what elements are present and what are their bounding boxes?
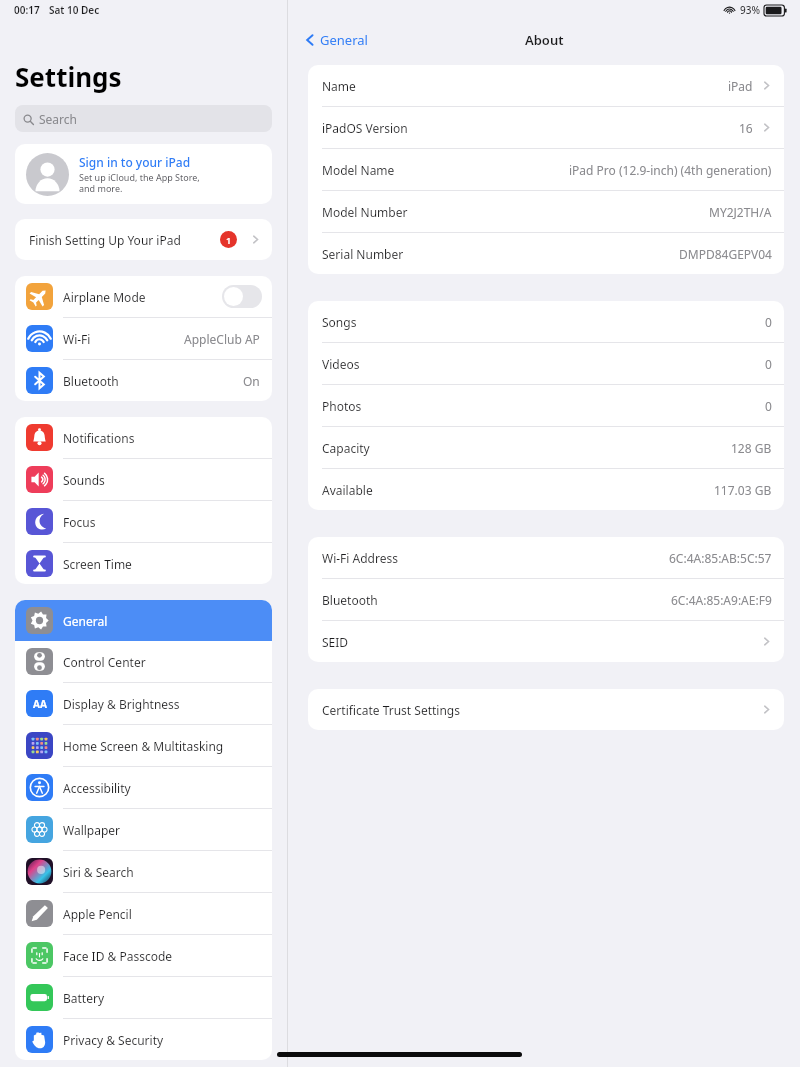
staticText: Wi-Fi <box>63 331 91 347</box>
staticText: iPadOS Version <box>322 120 408 136</box>
staticText: 16 <box>739 120 753 136</box>
button[interactable]: General <box>15 600 272 641</box>
button[interactable]: AA <box>15 683 272 724</box>
staticText: Certificate Trust Settings <box>322 702 460 718</box>
staticText: Wi-Fi Address <box>322 550 398 566</box>
button[interactable]: Videos <box>308 343 784 384</box>
button[interactable]: Privacy & Security <box>15 1019 272 1060</box>
button[interactable]: Name <box>308 65 784 106</box>
staticText: Finish Setting Up Your iPad <box>29 232 181 248</box>
staticText: 00:17 <box>14 3 40 17</box>
staticText: Sign in to your iPad <box>79 154 191 170</box>
button[interactable]: Sounds <box>15 459 272 500</box>
staticText: Accessibility <box>63 780 131 796</box>
staticText: Bluetooth <box>322 592 378 608</box>
button[interactable]: Finish Setting Up Your iPad <box>15 219 272 260</box>
button[interactable]: Airplane Mode <box>15 276 272 317</box>
button[interactable]: Battery <box>15 977 272 1018</box>
button[interactable]: Control Center <box>15 641 272 682</box>
button[interactable]: Siri & Search <box>15 851 272 892</box>
button[interactable]: Search <box>15 105 272 132</box>
button[interactable]: Notifications <box>15 417 272 458</box>
staticText: Notifications <box>63 430 135 446</box>
staticText: 6C:4A:85:A9:AE:F9 <box>671 592 772 608</box>
button[interactable]: Model Number <box>308 191 784 232</box>
staticText: 117.03 GB <box>714 482 772 498</box>
staticText: Control Center <box>63 654 146 670</box>
staticText: Wallpaper <box>63 822 121 838</box>
staticText: iPad Pro (12.9-inch) (4th generation) <box>569 162 772 178</box>
button[interactable]: Face ID & Passcode <box>15 935 272 976</box>
button[interactable]: Sign in to your iPad <box>15 144 272 204</box>
staticText: Set up iCloud, the App Store, and more. <box>79 171 200 195</box>
staticText: Home Screen & Multitasking <box>63 738 224 754</box>
button[interactable]: Focus <box>15 501 272 542</box>
button[interactable]: iPadOS Version <box>308 107 784 148</box>
button[interactable]: Model Name <box>308 149 784 190</box>
staticText: Screen Time <box>63 556 132 572</box>
staticText: AppleClub AP <box>184 331 260 347</box>
button[interactable]: Photos <box>308 385 784 426</box>
button[interactable]: Apple Pencil <box>15 893 272 934</box>
button[interactable]: Bluetooth <box>308 579 784 620</box>
staticText: Sat 10 Dec <box>49 3 100 17</box>
button[interactable]: Capacity <box>308 427 784 468</box>
staticText: Airplane Mode <box>63 289 146 305</box>
staticText: Model Name <box>322 162 395 178</box>
staticText: 1 <box>226 234 232 246</box>
staticText: Apple Pencil <box>63 906 132 922</box>
staticText: 6C:4A:85:AB:5C:57 <box>669 550 772 566</box>
staticText: 0 <box>765 314 772 330</box>
staticText: 93% <box>740 3 760 17</box>
staticText: AA <box>33 697 47 711</box>
staticText: Privacy & Security <box>63 1032 164 1048</box>
staticText: Capacity <box>322 440 370 456</box>
staticText: General <box>320 31 368 49</box>
staticText: Songs <box>322 314 357 330</box>
staticText: 0 <box>765 356 772 372</box>
button[interactable]: Serial Number <box>308 233 784 274</box>
staticText: DMPD84GEPV04 <box>679 246 772 262</box>
button[interactable]: Certificate Trust Settings <box>308 689 784 730</box>
button[interactable]: SEID <box>308 621 784 662</box>
staticText: Focus <box>63 514 96 530</box>
staticText: MY2J2TH/A <box>709 204 772 220</box>
button[interactable]: Songs <box>308 301 784 342</box>
staticText: Siri & Search <box>63 864 134 880</box>
staticText: Settings <box>15 59 122 94</box>
staticText: SEID <box>322 634 349 650</box>
staticText: Name <box>322 78 356 94</box>
staticText: Face ID & Passcode <box>63 948 173 964</box>
staticText: On <box>243 373 260 389</box>
staticText: 0 <box>765 398 772 414</box>
button[interactable]: Home Screen & Multitasking <box>15 725 272 766</box>
button[interactable]: Wi-Fi <box>15 318 272 359</box>
button[interactable]: Accessibility <box>15 767 272 808</box>
button[interactable]: Available <box>308 469 784 510</box>
staticText: iPad <box>728 78 753 94</box>
staticText: Serial Number <box>322 246 404 262</box>
button[interactable]: Screen Time <box>15 543 272 584</box>
button[interactable]: Bluetooth <box>15 360 272 401</box>
staticText: Available <box>322 482 373 498</box>
staticText: Photos <box>322 398 362 414</box>
button[interactable]: Wi-Fi Address <box>308 537 784 578</box>
button[interactable]: Airplane Mode toggle <box>222 285 262 308</box>
staticText: Videos <box>322 356 360 372</box>
staticText: About <box>525 31 564 49</box>
button[interactable]: General <box>301 28 370 52</box>
staticText: General <box>63 613 108 629</box>
staticText: Sounds <box>63 472 105 488</box>
staticText: Model Number <box>322 204 408 220</box>
button[interactable]: Wallpaper <box>15 809 272 850</box>
staticText: Bluetooth <box>63 373 119 389</box>
staticText: Display & Brightness <box>63 696 180 712</box>
staticText: 128 GB <box>731 440 772 456</box>
staticText: Search <box>39 111 77 127</box>
staticText: Battery <box>63 990 105 1006</box>
